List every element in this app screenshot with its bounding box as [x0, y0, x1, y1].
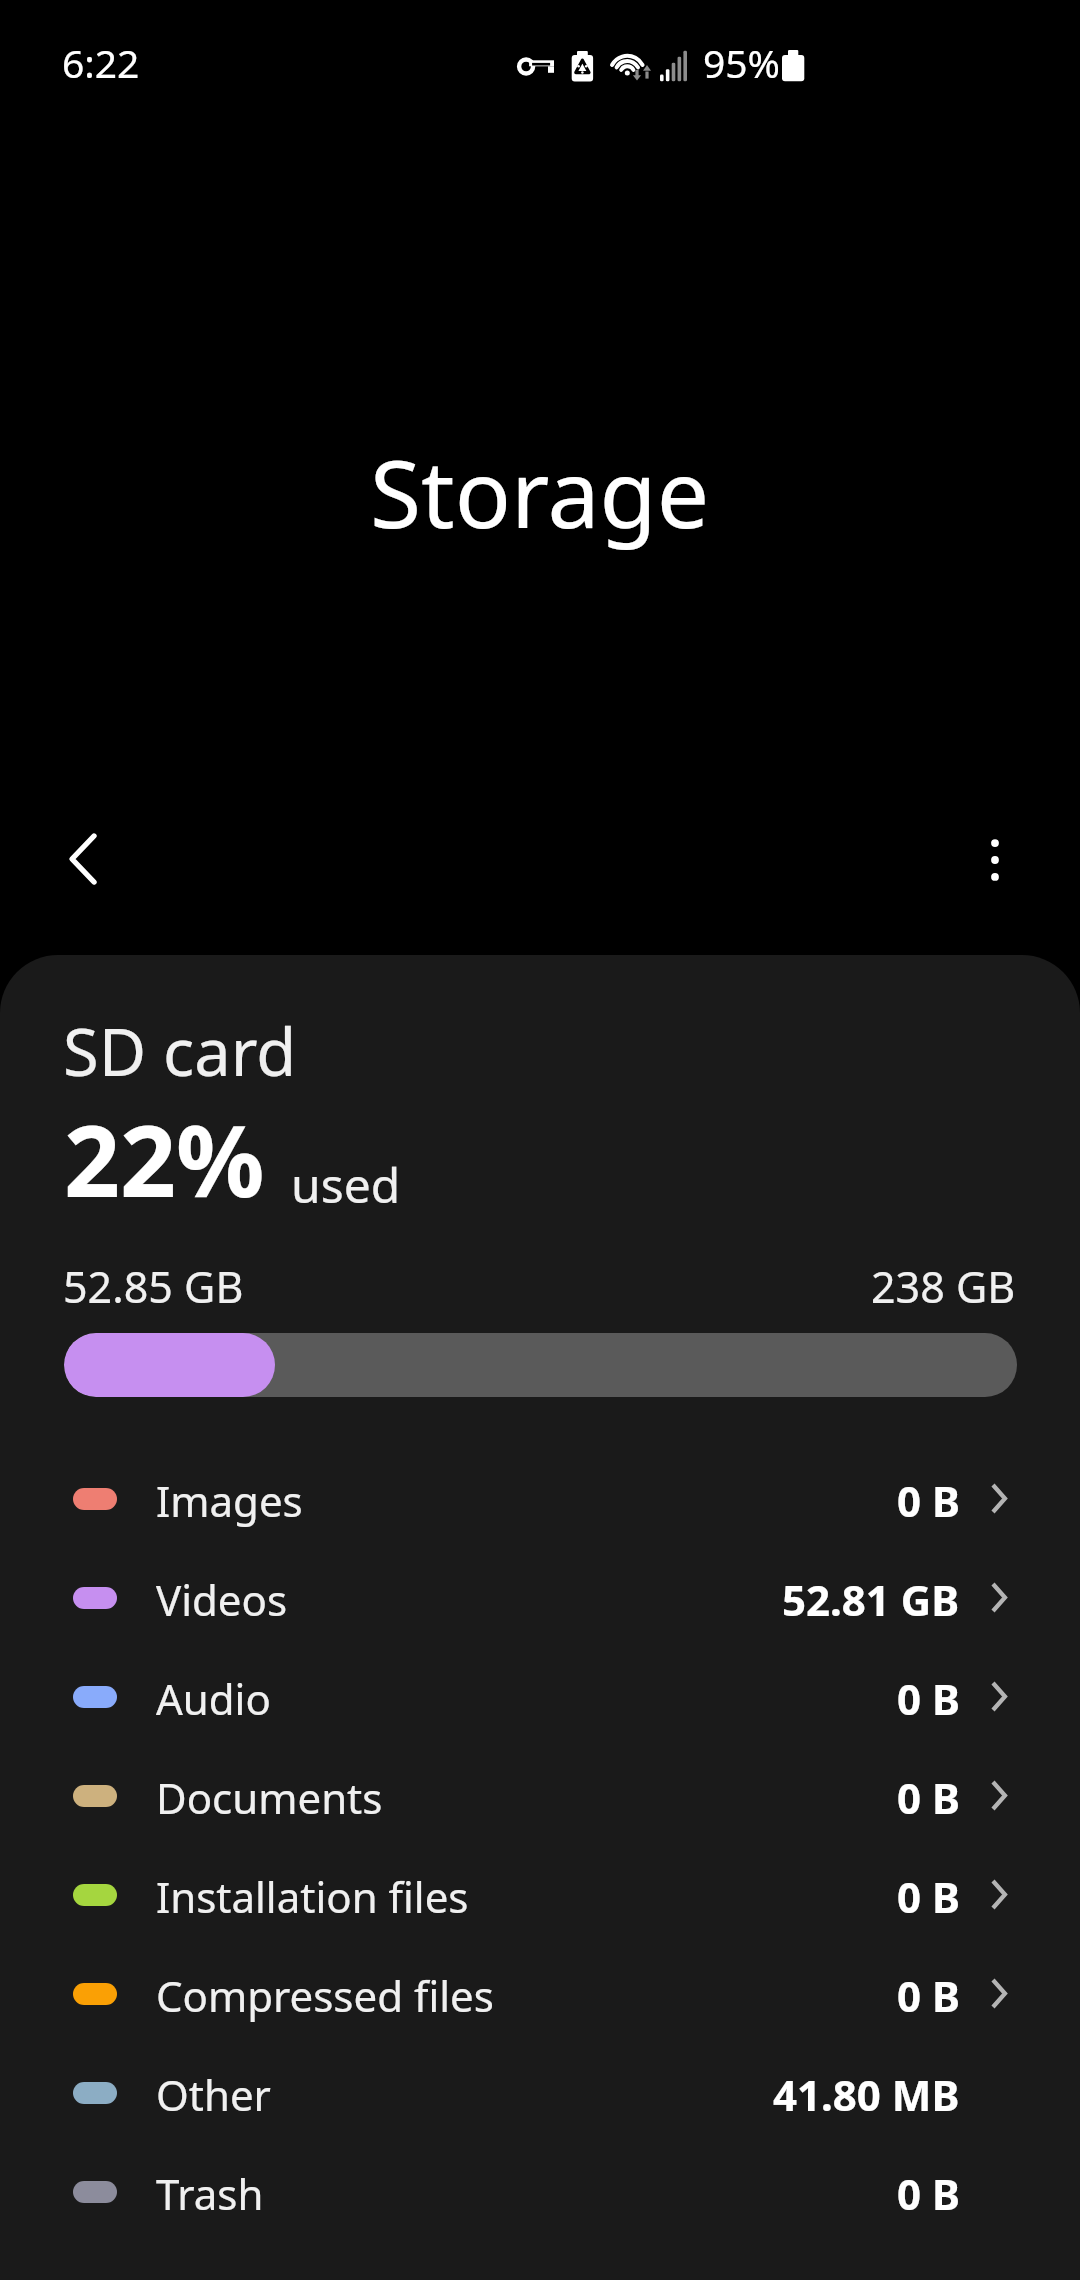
- button[interactable]: Installation files: [0, 1845, 1080, 1944]
- staticText: Other: [156, 2066, 271, 2123]
- staticText: 0 B: [897, 1670, 960, 1727]
- staticText: 95%: [703, 36, 781, 89]
- staticText: Audio: [156, 1670, 271, 1727]
- staticText: Images: [156, 1472, 303, 1529]
- button[interactable]: Navigate up: [38, 814, 128, 904]
- staticText: Installation files: [156, 1868, 469, 1925]
- staticText: Documents: [156, 1769, 383, 1826]
- button[interactable]: Images: [0, 1449, 1080, 1548]
- staticText: 52.85 GB: [63, 1257, 244, 1316]
- button[interactable]: More options: [950, 815, 1040, 905]
- button[interactable]: Videos: [0, 1548, 1080, 1647]
- staticText: 0 B: [897, 1472, 960, 1529]
- staticText: 22%: [64, 1092, 265, 1225]
- button[interactable]: Audio: [0, 1647, 1080, 1746]
- staticText: Videos: [156, 1571, 288, 1628]
- staticText: 0 B: [897, 2165, 960, 2222]
- button[interactable]: Compressed files: [0, 1944, 1080, 2043]
- staticText: SD card: [63, 1007, 297, 1096]
- staticText: 0 B: [897, 1868, 960, 1925]
- staticText: 0 B: [897, 1769, 960, 1826]
- button[interactable]: Documents: [0, 1746, 1080, 1845]
- staticText: Compressed files: [156, 1967, 494, 2024]
- staticText: 0 B: [897, 1967, 960, 2024]
- staticText: 41.80 MB: [773, 2066, 960, 2123]
- staticText: Trash: [156, 2165, 264, 2222]
- staticText: Storage: [370, 429, 710, 556]
- staticText: 238 GB: [871, 1257, 1016, 1316]
- button[interactable]: Trash: [0, 2142, 1080, 2241]
- staticText: 6:22: [62, 36, 140, 89]
- button[interactable]: Other: [0, 2043, 1080, 2142]
- staticText: 52.81 GB: [782, 1571, 960, 1628]
- staticText: used: [291, 1152, 401, 1217]
